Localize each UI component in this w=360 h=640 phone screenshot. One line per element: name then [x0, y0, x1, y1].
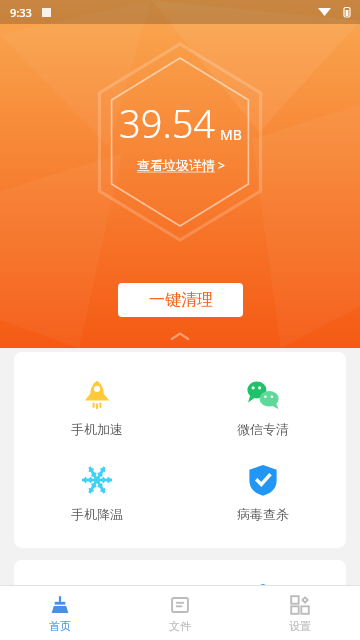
button[interactable]: 微信专清 — [180, 378, 346, 437]
button[interactable]: 超强省电 — [14, 582, 180, 640]
staticText: 微信专清 — [237, 421, 289, 437]
staticText: 手机加速 — [71, 421, 123, 437]
button[interactable]: 手机加速 — [14, 378, 180, 437]
staticText: MB — [220, 125, 242, 144]
staticText: 首页 — [49, 619, 71, 633]
button[interactable]: 首页 — [0, 586, 120, 640]
staticText: 手机降温 — [71, 506, 123, 522]
staticText: 设置 — [289, 619, 311, 633]
staticText: 9:33 — [10, 5, 32, 20]
staticText: 一键清理 — [149, 290, 213, 310]
staticText: 病毒查杀 — [237, 506, 289, 522]
staticText: 39.54 — [119, 97, 216, 149]
button[interactable]: 通知栏清理 — [180, 582, 346, 640]
staticText: 文件 — [169, 619, 191, 633]
button[interactable]: 查看垃圾详情 — [137, 157, 225, 173]
button[interactable]: 一键清理 — [118, 283, 243, 317]
staticText: 查看垃圾详情 — [137, 157, 215, 173]
button[interactable]: 设置 — [240, 586, 360, 640]
button[interactable]: 病毒查杀 — [180, 463, 346, 522]
staticText: 通知栏清理 — [231, 625, 296, 640]
button[interactable]: 文件 — [120, 586, 240, 640]
staticText: > — [218, 157, 225, 173]
button[interactable]: 手机降温 — [14, 463, 180, 522]
